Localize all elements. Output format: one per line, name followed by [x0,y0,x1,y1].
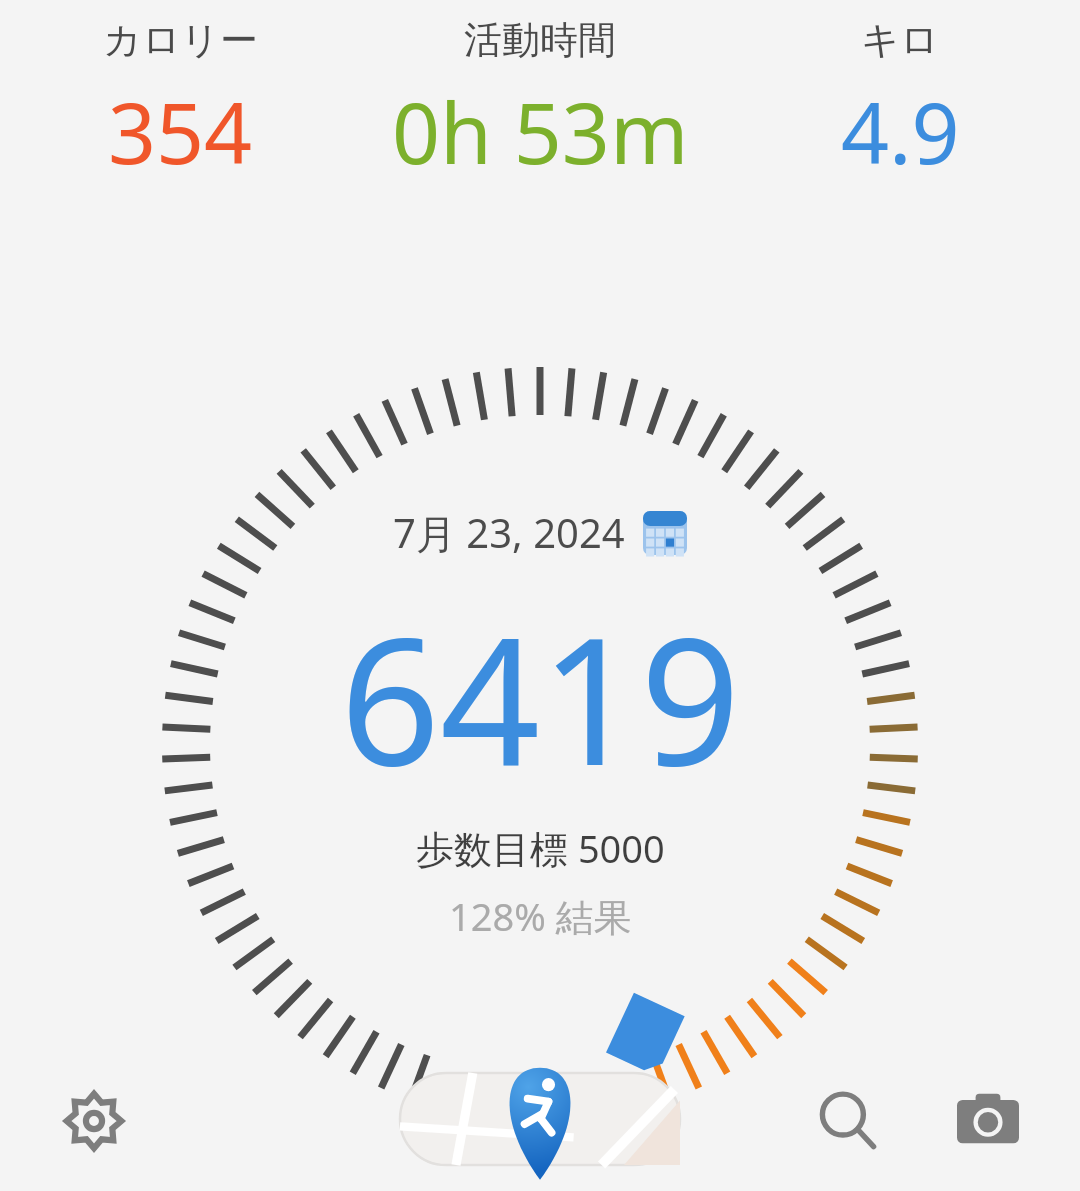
button[interactable]: カロリー [0,16,360,188]
staticText: キロ [861,16,939,64]
staticText: 6419 [340,578,741,816]
button[interactable]: Settings [52,1079,136,1163]
staticText: 活動時間 [464,16,616,64]
staticText: 0h 53m [392,74,689,188]
button[interactable]: Camera [946,1079,1030,1163]
staticText: 4.9 [841,74,960,188]
staticText: カロリー [103,16,258,64]
staticText: 128% 結果 [449,890,632,942]
staticText: 354 [108,74,253,188]
button[interactable]: Map [400,1073,680,1165]
button[interactable]: Search [806,1079,890,1163]
staticText: 7月 23, 2024 [393,505,625,560]
staticText: 歩数目標 5000 [416,822,665,874]
button[interactable]: 活動時間 [360,16,720,188]
button[interactable]: キロ [720,16,1080,188]
